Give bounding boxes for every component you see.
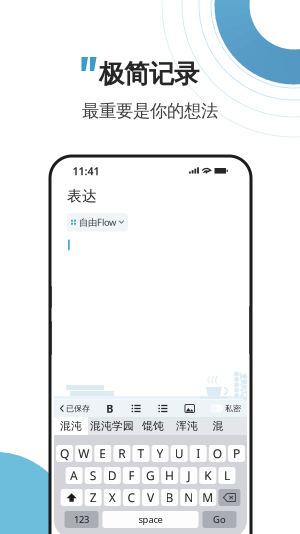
staticText: 自由Flow [79,216,116,228]
button[interactable]: M [199,489,216,506]
staticText: 11:41 [72,164,99,178]
button[interactable]: E [94,445,111,462]
button[interactable]: A [66,467,83,484]
button[interactable]: Insert image [183,403,196,414]
button[interactable]: X [104,489,121,506]
staticText: 123 [74,513,89,526]
button[interactable]: C [123,489,140,506]
button[interactable]: I [190,445,207,462]
staticText: 混沌学园 [90,419,134,432]
staticText: B [166,489,174,505]
button[interactable]: 浑沌 [170,417,204,435]
button[interactable]: L [218,467,235,484]
button[interactable]: Bold [104,403,116,414]
staticText: 混 [212,419,223,432]
staticText: O [213,445,222,461]
button[interactable]: R [113,445,130,462]
button[interactable]: J [180,467,197,484]
staticText: T [137,445,144,461]
staticText: W [78,445,89,461]
staticText: Z [90,489,97,505]
staticText: 私密 [225,404,241,413]
button[interactable]: V [142,489,159,506]
button[interactable]: P [228,445,245,462]
button[interactable]: D [104,467,121,484]
staticText: C [127,489,135,505]
staticText: 极简记录 [99,58,199,89]
staticText: 表达 [67,187,97,205]
button[interactable]: 混 [204,417,232,435]
staticText: 馄饨 [142,419,164,432]
staticText: M [202,489,213,505]
button[interactable]: Q [56,445,73,462]
staticText: H [165,467,174,483]
staticText: Y [157,445,164,461]
button[interactable]: Z [85,489,102,506]
staticText: 已保存 [66,404,90,413]
staticText: X [109,489,116,505]
staticText: A [70,467,78,483]
button[interactable]: 已保存 [60,401,90,416]
staticText: L [224,467,230,483]
button[interactable]: Y [152,445,169,462]
button[interactable]: 自由Flow [67,213,128,231]
staticText: J [187,467,190,483]
button[interactable]: Bulleted list [130,403,143,414]
staticText: 浑沌 [176,419,198,432]
button[interactable]: U [171,445,188,462]
button[interactable]: G [142,467,159,484]
staticText: space [138,513,162,526]
button[interactable]: 混沌 [54,417,88,435]
button[interactable]: T [132,445,149,462]
staticText: G [146,467,155,483]
staticText: R [118,445,125,461]
button[interactable]: N [180,489,197,506]
button[interactable]: Go [202,511,236,528]
button[interactable]: space [102,511,198,528]
staticText: U [175,445,184,461]
button[interactable]: 混沌学园 [88,417,136,435]
staticText: N [184,489,193,505]
button[interactable]: 私密 [210,404,241,413]
button[interactable]: W [75,445,92,462]
staticText: E [99,445,106,461]
button[interactable]: B [161,489,178,506]
staticText: 最重要是你的想法 [82,100,218,122]
button[interactable]: K [199,467,216,484]
button[interactable]: 123 [64,511,98,528]
staticText: Q [60,445,69,461]
button[interactable]: Shift [61,489,83,506]
staticText: P [233,445,240,461]
button[interactable]: S [85,467,102,484]
staticText: F [128,467,134,483]
staticText: D [108,467,117,483]
staticText: S [90,467,97,483]
staticText: I [196,445,200,461]
button[interactable]: 馄饨 [136,417,170,435]
staticText: V [147,489,154,505]
button[interactable]: Delete [218,489,240,506]
button[interactable]: F [123,467,140,484]
button[interactable]: H [161,467,178,484]
staticText: Go [213,513,226,526]
staticText: B [106,401,113,416]
staticText: 混沌 [60,419,82,432]
button[interactable]: Numbered list [156,403,169,414]
button[interactable]: O [209,445,226,462]
staticText: K [204,467,211,483]
